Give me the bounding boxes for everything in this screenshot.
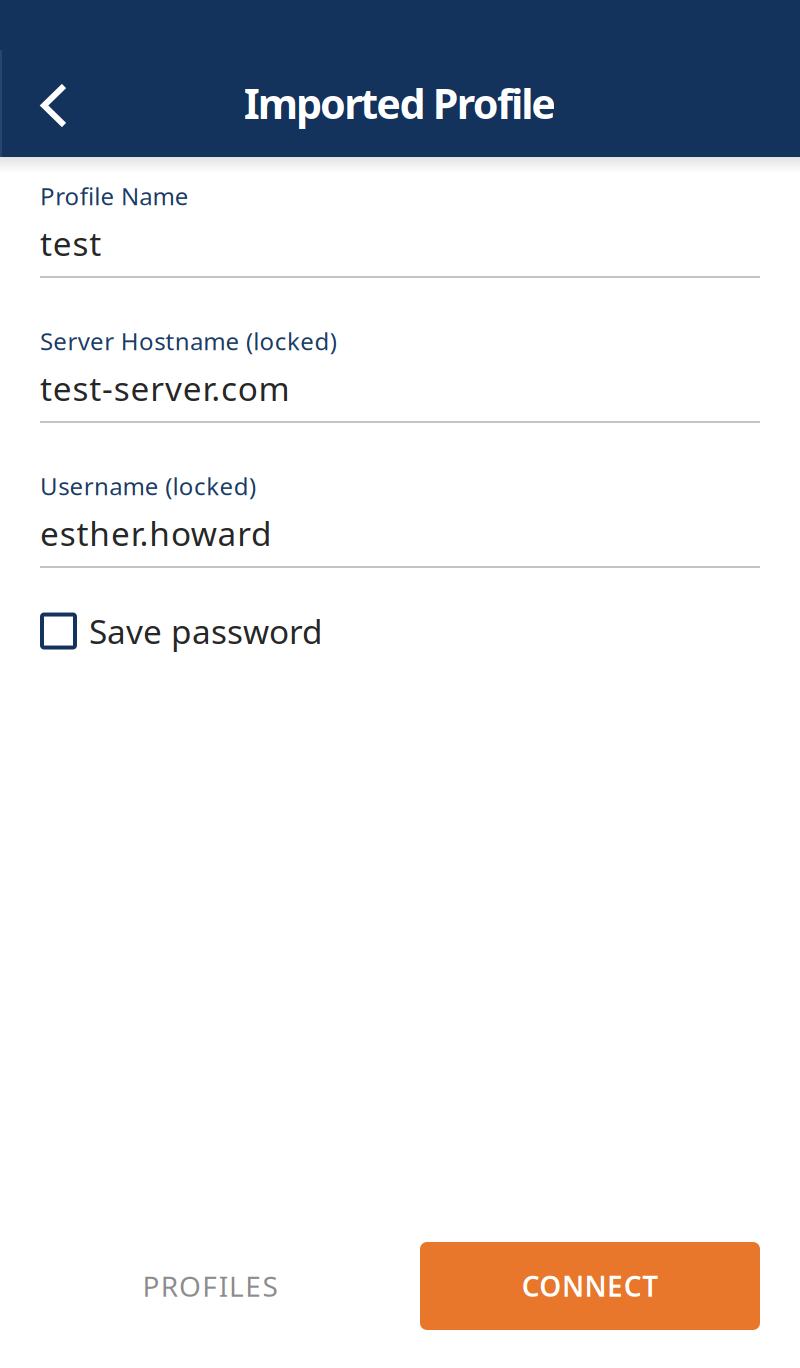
staticText: Server Hostname (locked) — [40, 325, 337, 357]
button[interactable]: CONNECT — [420, 1242, 760, 1330]
staticText: Imported Profile — [244, 76, 556, 130]
staticText: test-server.com — [40, 366, 289, 410]
staticText: Username (locked) — [40, 470, 256, 502]
staticText: PROFILES — [142, 1267, 278, 1305]
staticText: esther.howard — [40, 511, 272, 555]
button[interactable]: Save password — [40, 609, 440, 653]
button[interactable]: Back — [0, 60, 105, 146]
staticText: Profile Name — [40, 180, 189, 212]
staticText: Save password — [89, 609, 323, 653]
staticText: CONNECT — [522, 1267, 658, 1305]
staticText: test — [40, 221, 101, 265]
button[interactable]: PROFILES — [40, 1242, 380, 1330]
